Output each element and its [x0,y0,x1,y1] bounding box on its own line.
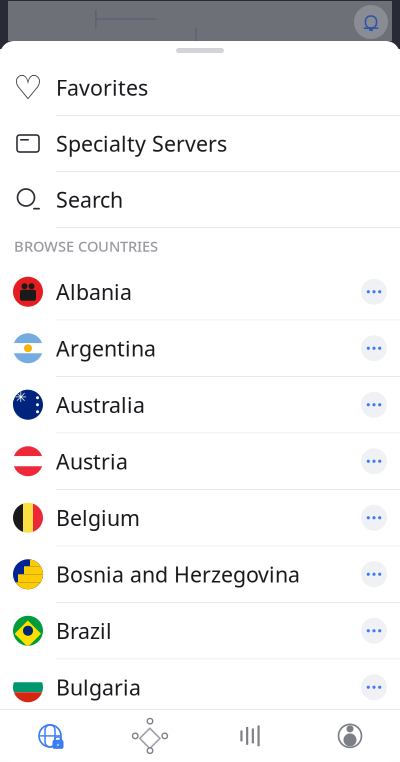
button[interactable]: More options [361,392,387,418]
staticText: ♡ [13,69,43,106]
button[interactable]: Statistics [200,710,300,762]
button[interactable]: Bulgaria [0,659,400,715]
button[interactable]: More options [361,561,387,587]
button[interactable]: Belgium [0,490,400,545]
button[interactable]: ♡ [0,60,400,115]
staticText: Bosnia and Herzegovina [56,560,300,588]
button[interactable]: More options [361,505,387,531]
button[interactable]: Specialty Servers [0,116,400,171]
button[interactable]: More options [361,674,387,700]
staticText: BROWSE COUNTRIES [14,236,158,256]
button[interactable]: Argentina [0,320,400,376]
button[interactable]: VPN [0,710,100,762]
staticText: Argentina [56,334,156,362]
button[interactable]: More options [361,335,387,361]
staticText: ◆ [14,611,41,650]
button[interactable]: ◆ [0,603,400,658]
staticText: Australia [56,391,145,419]
staticText: ✳ [14,389,26,405]
button[interactable]: Mesh Network [100,710,200,762]
button[interactable]: More options [361,618,387,644]
staticText: Bulgaria [56,673,141,701]
button[interactable]: Albania [0,264,400,319]
button[interactable]: More options [361,279,387,305]
staticText: Albania [56,278,132,306]
staticText: Favorites [56,73,148,102]
staticText: Austria [56,447,128,475]
staticText: Search [56,185,123,214]
staticText: Specialty Servers [56,129,227,158]
button[interactable]: Notifications [354,5,388,39]
button[interactable]: More options [361,448,387,474]
button[interactable]: Bosnia and Herzegovina [0,546,400,602]
staticText: ◇ [138,719,161,753]
button[interactable]: Search [0,172,400,227]
button[interactable]: ✳ [0,377,400,432]
staticText: Brazil [56,617,112,645]
button[interactable]: Profile [300,710,400,762]
button[interactable]: Austria [0,433,400,489]
staticText: Belgium [56,504,140,532]
